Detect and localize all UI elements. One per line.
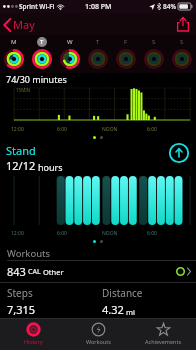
staticText: T [40,38,44,46]
staticText: Distance [102,286,143,300]
staticText: 6:00 [57,230,67,237]
button[interactable]: M [0,35,28,70]
staticText: Stand [6,143,36,158]
staticText: 6:00 [147,126,157,133]
button[interactable]: Achievements [131,319,196,350]
staticText: 7,315 [7,302,36,317]
staticText: History [24,338,43,345]
staticText: W [67,38,73,46]
button[interactable]: Workouts [66,319,131,350]
staticText: 12:00 [11,230,24,237]
staticText: 6:00 [147,230,157,237]
staticText: Other [43,267,64,277]
button[interactable]: S [140,35,168,70]
staticText: Workouts [86,338,111,345]
button[interactable]: Stand goal achieved [169,143,189,163]
staticText: 6:00 [57,126,67,133]
staticText: 74/30 minutes [6,73,67,84]
button[interactable]: T [84,35,112,70]
staticText: hours [38,161,63,173]
button[interactable]: W [56,35,84,70]
staticText: mi [126,307,135,317]
button[interactable]: Distance [98,283,196,317]
staticText: May [13,17,35,32]
button[interactable]: Steps [0,283,98,317]
staticText: 84% [163,2,176,11]
button[interactable]: History [0,319,66,350]
staticText: S [180,38,184,46]
staticText: T [96,38,100,46]
staticText: Achievements [145,338,182,345]
staticText: NOON [102,230,118,237]
button[interactable]: 843 [0,261,196,282]
staticText: Workouts [7,247,50,260]
staticText: 4.32 [102,302,124,317]
button[interactable]: May [0,15,41,34]
staticText: 12:00 [11,126,24,133]
staticText: Sprint Wi-Fi [19,2,55,11]
staticText: 843 [7,264,26,279]
staticText: 15MIN [16,87,31,93]
staticText: Steps [7,286,33,300]
staticText: 12/12 [6,158,36,173]
staticText: F [124,38,128,46]
staticText: CAL [28,267,41,277]
staticText: NOON [102,126,118,133]
button[interactable]: S [168,35,196,70]
staticText: 1:08 PM [85,2,112,12]
staticText: S [152,38,156,46]
button[interactable]: T [28,35,56,70]
staticText: M [11,38,17,46]
button[interactable]: F [112,35,140,70]
button[interactable]: Share [177,17,196,31]
